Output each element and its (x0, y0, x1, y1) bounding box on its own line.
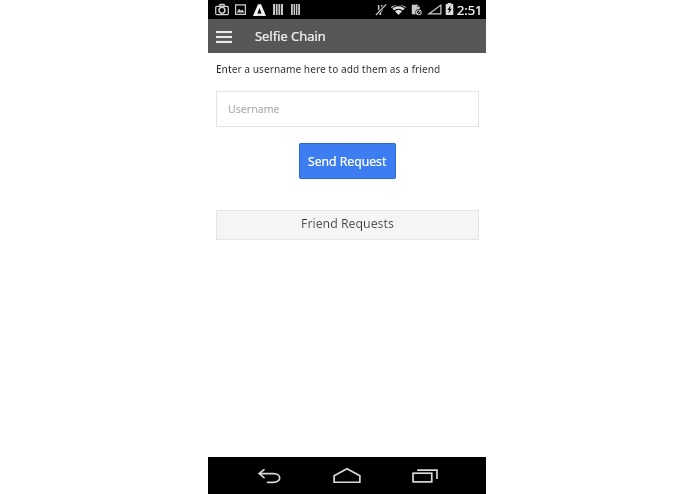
button[interactable]: Username (216, 91, 479, 127)
button[interactable]: Home (327, 457, 367, 494)
button[interactable]: Back (250, 457, 290, 494)
staticText: Username (228, 102, 280, 116)
button[interactable]: Friend Requests (216, 210, 479, 240)
staticText: Friend Requests (301, 215, 394, 232)
button[interactable]: Send Request (299, 143, 396, 179)
button[interactable]: Recent apps (405, 457, 445, 494)
staticText: 2:51 (457, 1, 483, 18)
staticText: Enter a username here to add them as a f… (216, 62, 441, 76)
button[interactable]: Open navigation menu (210, 23, 238, 51)
staticText: Selfie Chain (255, 27, 326, 45)
staticText: Send Request (308, 153, 387, 170)
